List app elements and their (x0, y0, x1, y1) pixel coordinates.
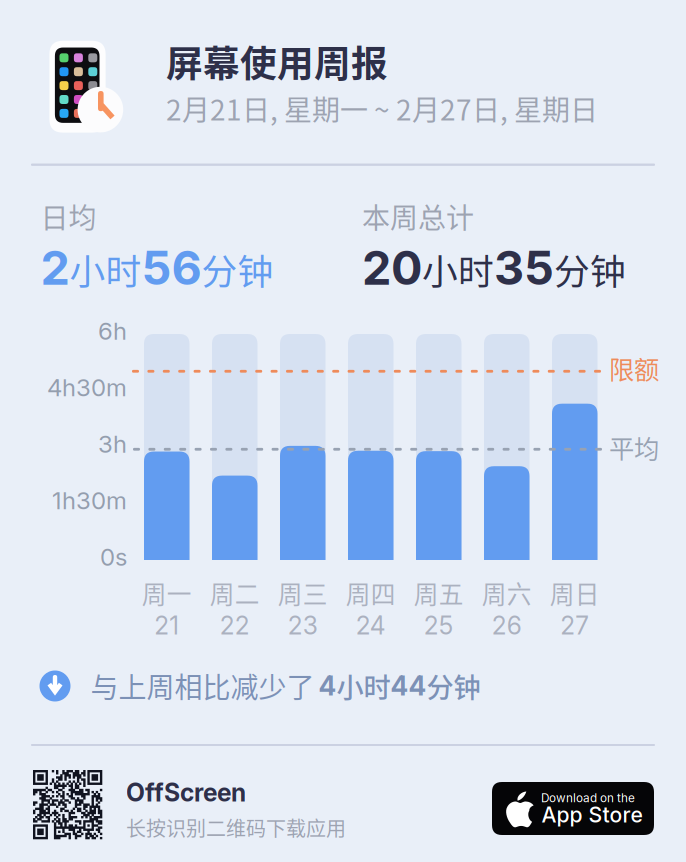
staticText: 6h (98, 316, 127, 345)
staticText: 本周总计 (362, 196, 474, 236)
staticText: 周二 (210, 575, 260, 611)
staticText: 日均 (40, 196, 96, 236)
staticText: Download on the (541, 791, 635, 805)
staticText: 限额 (609, 350, 659, 386)
staticText: 21 (154, 611, 179, 640)
staticText: 长按识别二维码下载应用 (126, 813, 346, 842)
button[interactable]: 长按识别二维码下载应用 (33, 770, 353, 841)
staticText: 24 (356, 611, 386, 640)
staticText: 屏幕使用周报 (166, 34, 388, 88)
staticText: 0s (100, 542, 127, 571)
staticText: 周日 (550, 575, 600, 611)
staticText: 与上周相比减少了 (90, 665, 314, 706)
staticText: 22 (220, 611, 250, 640)
staticText: 周四 (346, 575, 396, 611)
staticText: 1h30m (52, 486, 127, 515)
staticText: 分钟 (554, 243, 626, 295)
staticText: 小时 (69, 243, 141, 295)
staticText: 35 (494, 239, 554, 296)
staticText: 周六 (482, 575, 532, 611)
staticText: 小时 (336, 666, 390, 705)
staticText: 周五 (414, 575, 464, 611)
staticText: 56 (141, 239, 201, 296)
staticText: 4 (318, 670, 336, 702)
staticText: 20 (362, 239, 422, 296)
staticText: 周一 (142, 575, 192, 611)
staticText: OffScreen (126, 777, 246, 807)
staticText: 3h (98, 429, 127, 458)
staticText: 25 (424, 611, 454, 640)
staticText: 23 (288, 611, 318, 640)
staticText: 分钟 (201, 243, 273, 295)
staticText: 小时 (422, 243, 494, 295)
staticText: 26 (492, 611, 522, 640)
staticText: 27 (560, 611, 589, 640)
button[interactable]: Download on the App Store (492, 782, 654, 835)
staticText: 平均 (609, 429, 659, 465)
staticText: 2月21日, 星期一 ~ 2月27日, 星期日 (166, 88, 598, 129)
staticText: 分钟 (426, 666, 480, 705)
staticText: App Store (541, 802, 642, 828)
staticText: 周三 (278, 575, 328, 611)
staticText: 4h30m (47, 373, 127, 402)
staticText: 44 (390, 670, 426, 702)
staticText: 2 (40, 239, 69, 296)
